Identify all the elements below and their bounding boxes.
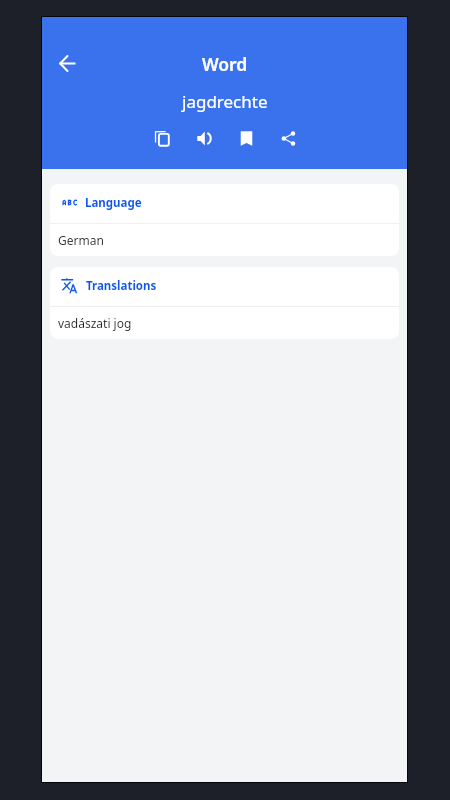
button[interactable]: vadászati jog <box>50 307 399 339</box>
staticText: Language <box>85 195 142 211</box>
button[interactable]: Back <box>48 44 87 83</box>
staticText: Word <box>202 52 248 76</box>
button[interactable]: Translations <box>50 267 399 306</box>
button[interactable]: Copy <box>154 130 170 146</box>
button[interactable]: German <box>50 224 399 256</box>
staticText: German <box>58 232 104 248</box>
staticText: jagdrechte <box>182 90 268 113</box>
button[interactable]: Share <box>280 130 296 146</box>
button[interactable]: Bookmark <box>238 130 254 146</box>
button[interactable]: Language <box>50 184 399 223</box>
button[interactable]: Listen <box>196 130 212 146</box>
staticText: vadászati jog <box>58 315 132 331</box>
staticText: Translations <box>86 278 157 294</box>
